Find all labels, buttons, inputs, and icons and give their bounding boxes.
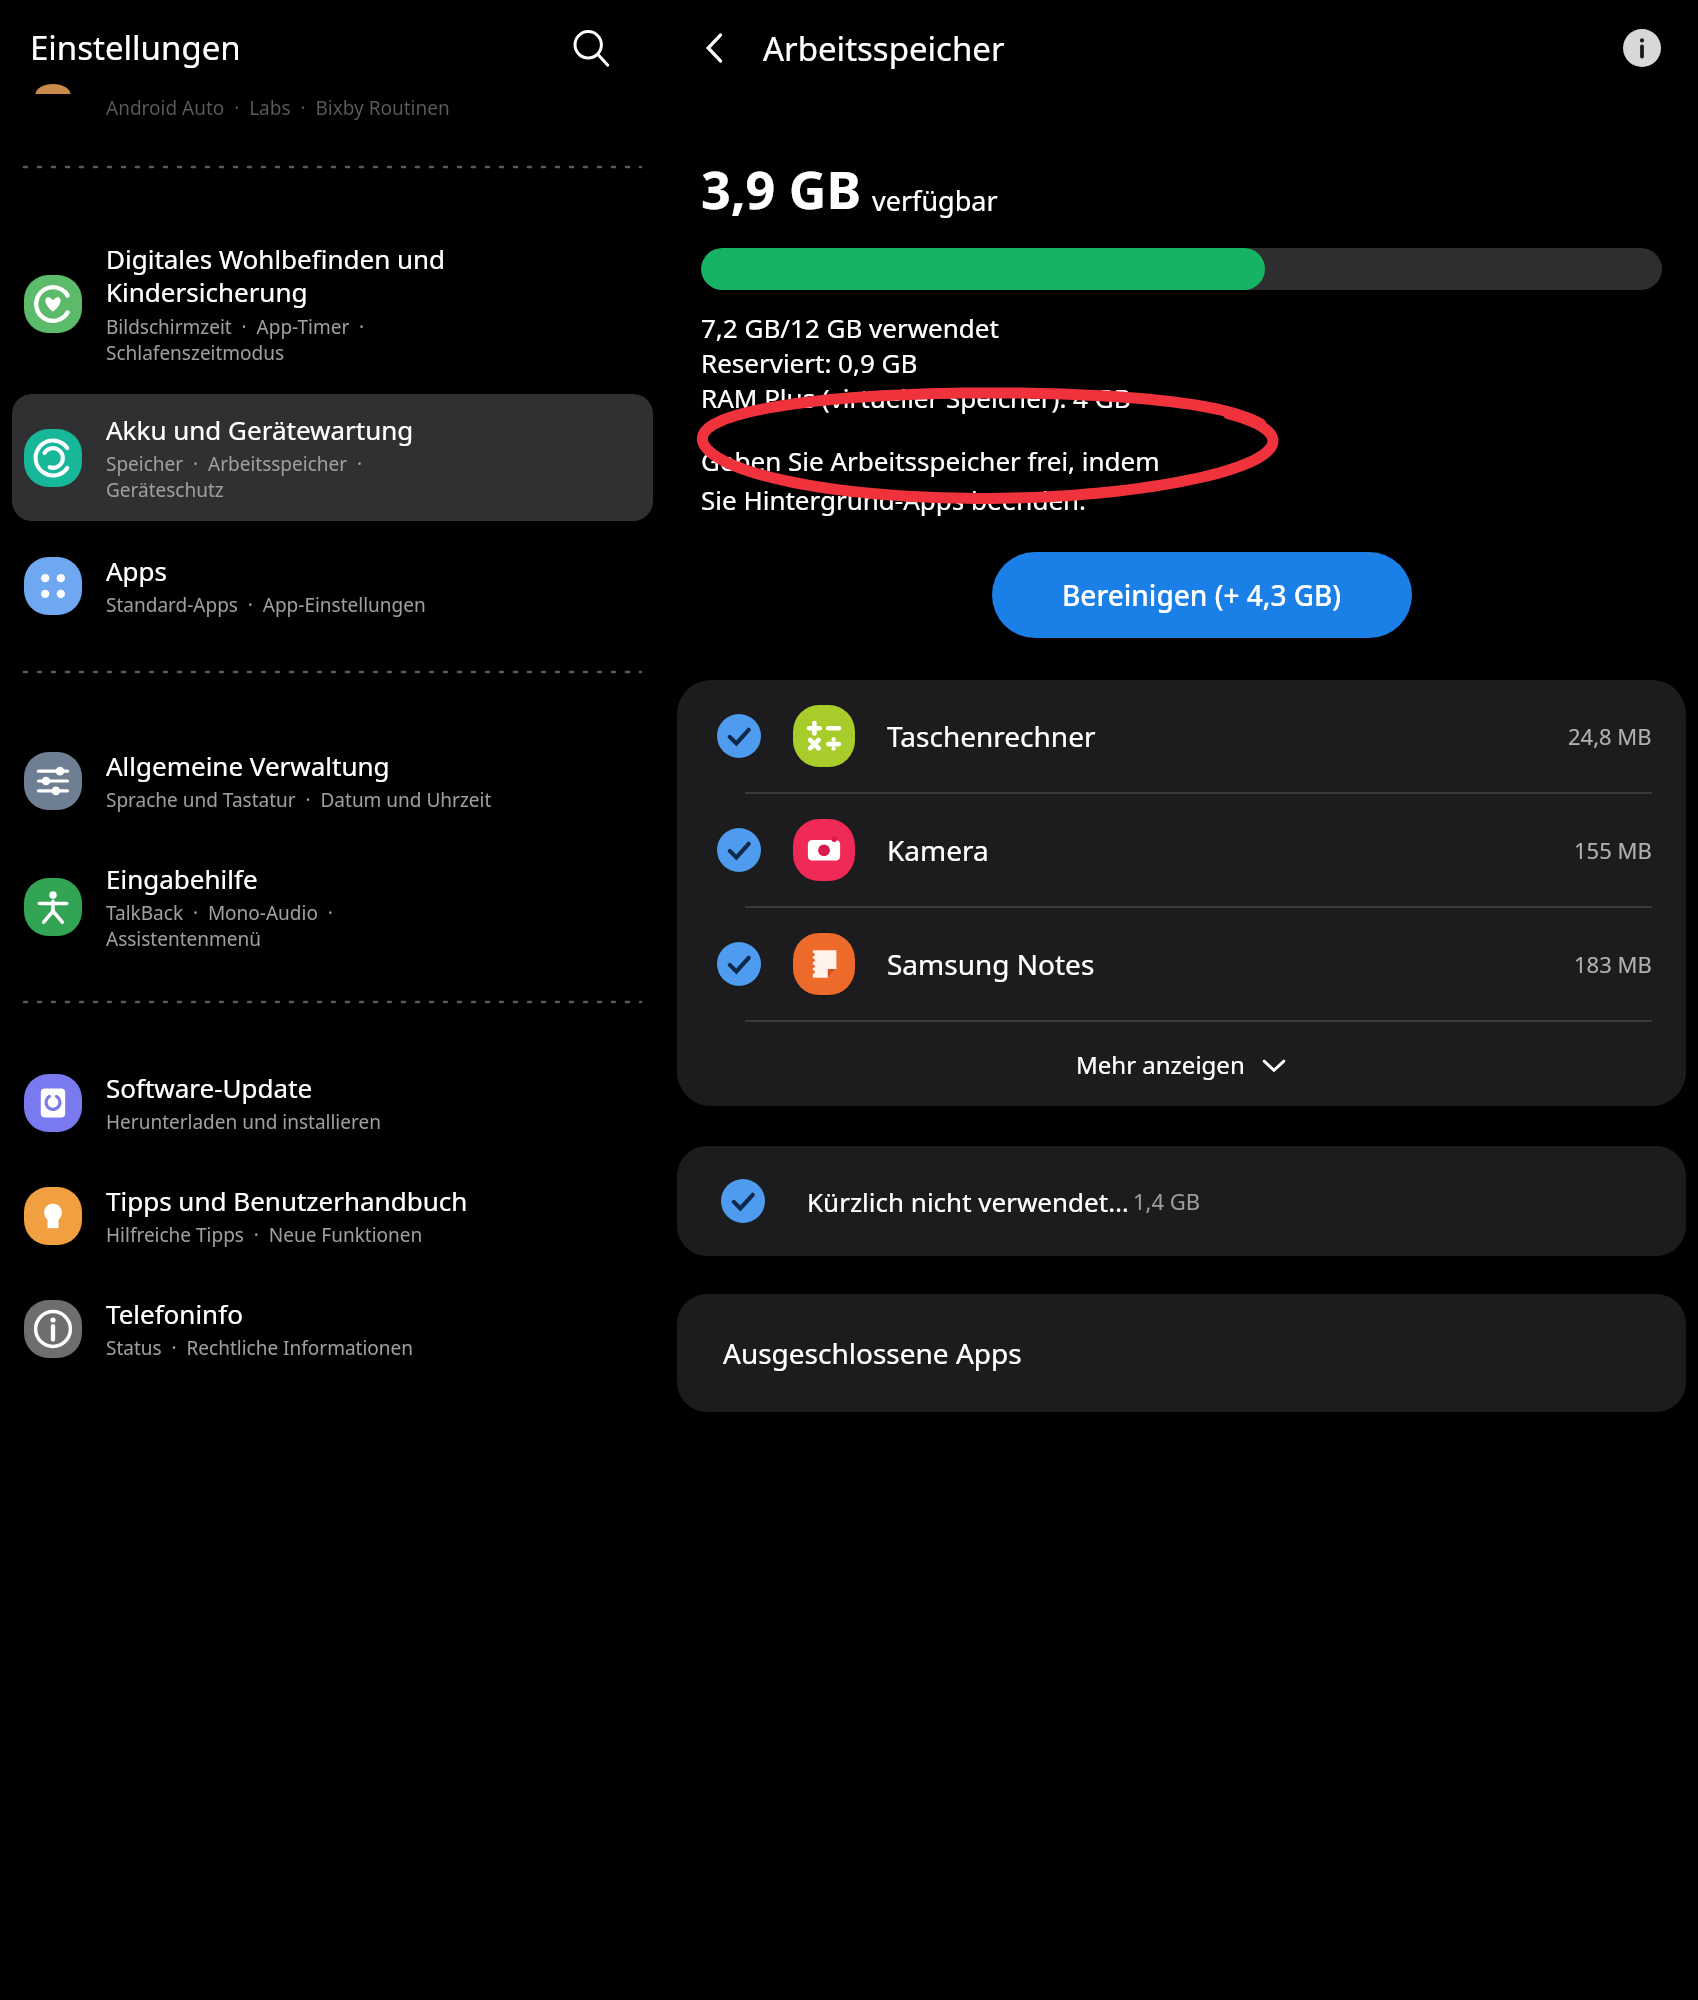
staticText: Mehr anzeigen [1076, 1048, 1245, 1081]
button[interactable]: Digitales Wohlbefinden und Kindersicheru… [12, 223, 653, 384]
other: Auswählen [717, 714, 761, 758]
staticText: 1,4 GB [1133, 1186, 1201, 1216]
button[interactable]: Auswählen [677, 680, 1686, 792]
button[interactable]: Auswählen [677, 1146, 1686, 1256]
staticText: Eingabehilfe [106, 861, 258, 896]
staticText: Android Auto · Labs · Bixby Routinen [106, 95, 450, 121]
button[interactable]: Eingabehilfe [12, 843, 653, 970]
button[interactable]: Info [1614, 20, 1670, 76]
staticText: 183 MB [1574, 949, 1652, 979]
staticText: Digitales Wohlbefinden und Kindersicheru… [106, 241, 446, 310]
staticText: Kamera [887, 831, 1574, 869]
staticText: Akku und Gerätewartung [106, 412, 414, 447]
button[interactable]: Mehr anzeigen [677, 1022, 1686, 1106]
button[interactable]: Akku und Gerätewartung [12, 394, 653, 521]
button[interactable]: Bereinigen (+ 4,3 GB) [992, 552, 1412, 638]
staticText: Tipps und Benutzerhandbuch [106, 1183, 468, 1218]
staticText: verfügbar [872, 182, 998, 219]
staticText: TalkBack · Mono-Audio · Assistentenmenü [106, 900, 333, 952]
staticText: Bereinigen (+ 4,3 GB) [1062, 576, 1342, 614]
staticText: Bildschirmzeit · App-Timer · Schlafensze… [106, 314, 365, 366]
staticText: Telefoninfo [106, 1296, 243, 1331]
other: Auswählen [717, 828, 761, 872]
button[interactable]: Suchen [561, 18, 621, 78]
button[interactable]: Ausgeschlossene Apps [677, 1294, 1686, 1412]
other: Auswählen [721, 1179, 765, 1223]
button[interactable]: Auswählen [677, 908, 1686, 1020]
staticText: Hilfreiche Tipps · Neue Funktionen [106, 1222, 423, 1248]
staticText: Status · Rechtliche Informationen [106, 1335, 414, 1361]
staticText: Kürzlich nicht verwendet… [807, 1184, 1129, 1219]
staticText: Herunterladen und installieren [106, 1109, 381, 1135]
other: Auswählen [717, 942, 761, 986]
staticText: Apps [106, 553, 168, 588]
staticText: Standard-Apps · App-Einstellungen [106, 592, 426, 618]
staticText: RAM Plus (virtueller Speicher): 4 GB [701, 380, 1131, 415]
staticText: Einstellungen [30, 25, 241, 70]
staticText: 3,9 GB [701, 153, 862, 224]
staticText: Reserviert: 0,9 GB [701, 345, 918, 380]
button[interactable]: Auswählen [677, 794, 1686, 906]
staticText: Allgemeine Verwaltung [106, 748, 390, 783]
button[interactable]: Tipps und Benutzerhandbuch [12, 1165, 653, 1266]
staticText: Geben Sie Arbeitsspeicher frei, indem Si… [701, 443, 1160, 518]
staticText: Software-Update [106, 1070, 313, 1105]
staticText: 155 MB [1574, 835, 1652, 865]
staticText: Speicher · Arbeitsspeicher · Geräteschut… [106, 451, 363, 503]
staticText: Taschenrechner [887, 717, 1568, 755]
staticText: Sprache und Tastatur · Datum und Uhrzeit [106, 787, 492, 813]
button[interactable]: Telefoninfo [12, 1278, 653, 1379]
staticText: Arbeitsspeicher [763, 26, 1005, 71]
button[interactable]: Zurück [683, 16, 747, 80]
button[interactable]: Apps [12, 535, 653, 636]
button[interactable]: Software-Update [12, 1052, 653, 1153]
button[interactable]: Allgemeine Verwaltung [12, 730, 653, 831]
staticText: Samsung Notes [887, 945, 1574, 983]
staticText: Ausgeschlossene Apps [723, 1334, 1022, 1372]
staticText: 7,2 GB/12 GB verwendet [701, 310, 999, 345]
staticText: 24,8 MB [1568, 721, 1652, 751]
